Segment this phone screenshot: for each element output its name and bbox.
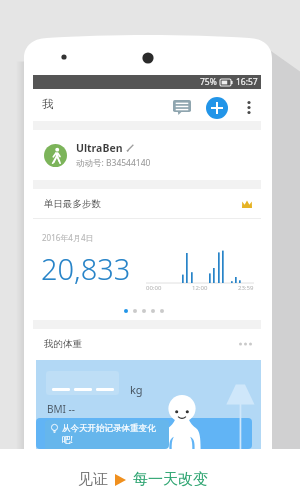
- staticText: 2016年4月4日: [42, 232, 94, 243]
- staticText: 75%: [200, 76, 217, 88]
- staticText: kg: [130, 382, 143, 397]
- staticText: 16:57: [236, 76, 258, 88]
- staticText: 00:00: [146, 284, 162, 292]
- button[interactable]: 我的体重: [33, 329, 261, 358]
- staticText: 从今天开始记录体重变化吧!: [62, 423, 166, 446]
- button[interactable]: 从今天开始记录体重变化吧!: [45, 420, 169, 449]
- button[interactable]: UltraBen: [33, 130, 261, 180]
- staticText: UltraBen: [76, 141, 123, 155]
- staticText: 20,833: [41, 249, 131, 288]
- button[interactable]: 2016年4月4日: [33, 219, 261, 320]
- staticText: 见证: [78, 470, 108, 489]
- button[interactable]: More options: [237, 95, 260, 119]
- staticText: 单日最多步数: [44, 198, 101, 210]
- staticText: 每一天改变: [133, 470, 208, 489]
- button[interactable]: [46, 371, 119, 395]
- staticText: BMI --: [47, 402, 75, 416]
- staticText: 12:00: [192, 284, 208, 292]
- staticText: 动动号: B34544140: [76, 157, 151, 169]
- button[interactable]: kg: [36, 360, 261, 449]
- button[interactable]: 单日最多步数: [33, 189, 261, 218]
- button[interactable]: Add: [206, 97, 228, 119]
- staticText: 23:59: [238, 284, 254, 292]
- staticText: 我: [42, 97, 54, 111]
- staticText: 我的体重: [44, 338, 82, 350]
- button[interactable]: Messages: [166, 92, 197, 123]
